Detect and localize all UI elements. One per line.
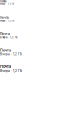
staticText: Почта xyxy=(0,16,9,19)
staticText: Почта xyxy=(0,32,10,36)
staticText: Вчера · 1,2 ГБ xyxy=(0,52,22,56)
staticText: Почта xyxy=(0,64,11,69)
staticText: Почта xyxy=(0,0,6,3)
staticText: Вчера · 1,2 ГБ xyxy=(0,69,22,73)
staticText: Вчера · 1,2 ГБ xyxy=(0,3,14,5)
staticText: Вчера · 1,2 ГБ xyxy=(0,36,18,39)
staticText: Почта xyxy=(0,48,11,52)
staticText: Вчера · 1,2 ГБ xyxy=(0,19,14,22)
